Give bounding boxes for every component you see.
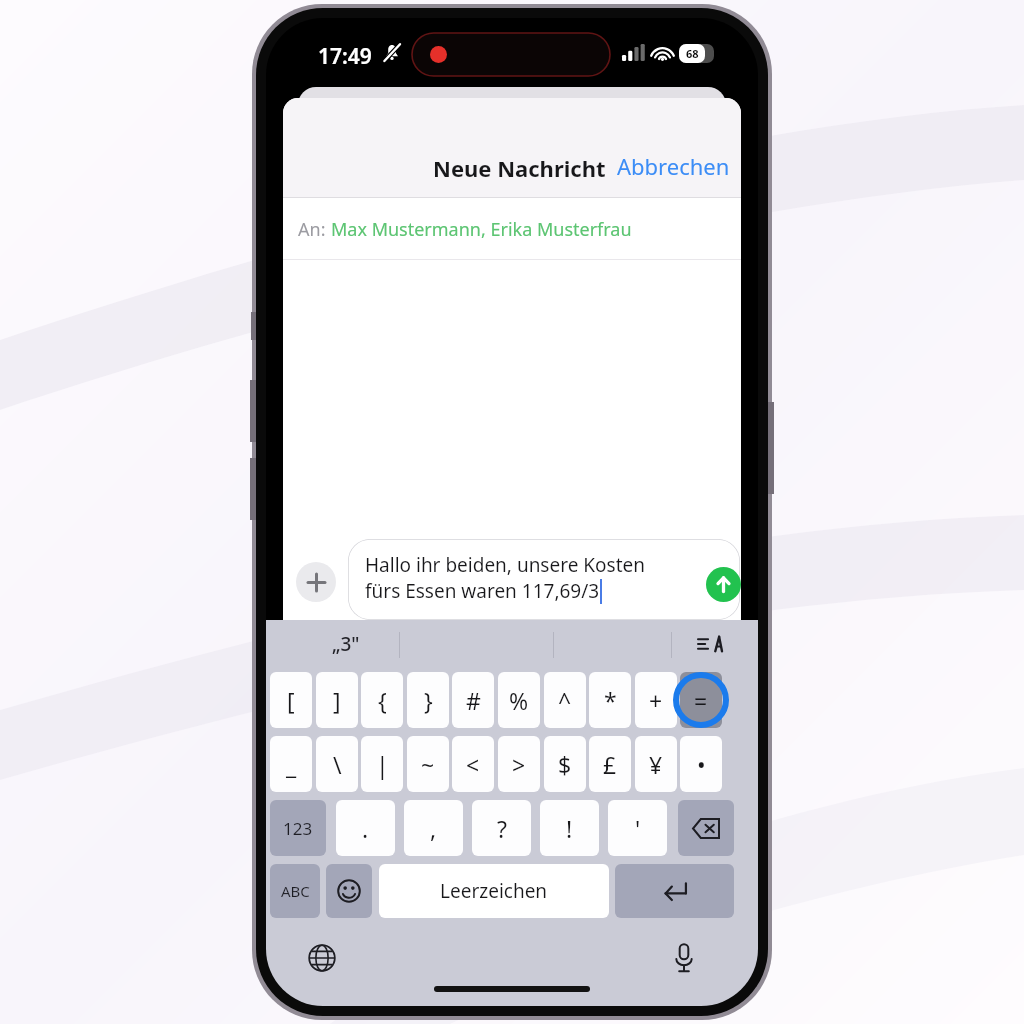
staticText: . [362, 813, 369, 844]
button[interactable]: „3" [296, 620, 396, 668]
staticText: $ [558, 749, 572, 780]
staticText: 17:49 [318, 42, 372, 71]
staticText: ? [497, 813, 507, 844]
staticText: ^ [558, 685, 572, 716]
staticText: [ [287, 685, 295, 716]
staticText: ¥ [649, 749, 663, 780]
button[interactable]: $ [544, 736, 586, 792]
button[interactable]: } [407, 672, 449, 728]
button[interactable]: Zeilenumbruch [615, 864, 734, 918]
button[interactable]: 123 [270, 800, 326, 856]
button[interactable]: Löschen [678, 800, 734, 856]
button[interactable]: = [680, 672, 722, 728]
button[interactable]: % [498, 672, 540, 728]
button[interactable]: ¥ [635, 736, 677, 792]
staticText: { [378, 685, 387, 716]
button[interactable]: ! [540, 800, 599, 856]
staticText: # [466, 685, 481, 716]
button[interactable]: Hallo ihr beiden, unsere Kosten [348, 539, 740, 620]
staticText: An: [298, 217, 331, 242]
button[interactable]: ^ [544, 672, 586, 728]
button[interactable]: ' [608, 800, 667, 856]
button[interactable]: ? [472, 800, 531, 856]
button[interactable]: { [361, 672, 403, 728]
button[interactable]: Tastatur wechseln [302, 938, 342, 978]
button[interactable]: Senden [706, 567, 741, 602]
staticText: • [697, 749, 706, 780]
staticText: } [424, 685, 433, 716]
staticText: , [430, 813, 437, 844]
staticText: * [604, 685, 617, 716]
button[interactable]: Diktieren [664, 938, 704, 978]
button[interactable]: # [452, 672, 494, 728]
button[interactable]: ABC [270, 864, 320, 918]
staticText: fürs Essen waren 117,69/3 [365, 578, 600, 604]
staticText: % [509, 685, 529, 716]
button[interactable]: | [361, 736, 403, 792]
button[interactable]: + [635, 672, 677, 728]
button[interactable]: Emoji [326, 864, 372, 918]
staticText: Hallo ihr beiden, unsere Kosten [365, 552, 645, 578]
button[interactable]: , [404, 800, 463, 856]
button[interactable]: * [589, 672, 631, 728]
staticText: | [376, 749, 389, 780]
staticText: 68 [686, 46, 699, 61]
staticText: Abbrechen [617, 151, 730, 181]
staticText: ] [333, 685, 341, 716]
staticText: _ [286, 749, 297, 780]
button[interactable]: \ [316, 736, 358, 792]
button[interactable]: Anhang hinzufügen [296, 562, 336, 602]
staticText: ! [566, 813, 573, 844]
button[interactable]: [ [270, 672, 312, 728]
staticText: > [512, 749, 526, 780]
staticText: + [649, 685, 663, 716]
button[interactable]: _ [270, 736, 312, 792]
staticText: ABC [281, 881, 310, 901]
button[interactable]: < [452, 736, 494, 792]
staticText: £ [603, 749, 617, 780]
button[interactable]: Textformatierung [684, 620, 736, 668]
button[interactable]: Abbrechen [607, 143, 740, 189]
button[interactable]: An: [283, 198, 741, 260]
button[interactable]: ~ [407, 736, 449, 792]
button[interactable]: • [680, 736, 722, 792]
button[interactable]: Leerzeichen [379, 864, 609, 918]
staticText: Max Mustermann, Erika Musterfrau [331, 217, 632, 242]
staticText: ~ [421, 749, 435, 780]
staticText: „3" [332, 631, 360, 657]
staticText: < [466, 749, 480, 780]
staticText: = [694, 685, 708, 716]
button[interactable]: ] [316, 672, 358, 728]
staticText: \ [333, 749, 342, 780]
staticText: 123 [283, 817, 313, 840]
button[interactable]: . [336, 800, 395, 856]
button[interactable]: £ [589, 736, 631, 792]
staticText: Leerzeichen [440, 878, 548, 904]
staticText: Neue Nachricht [433, 153, 606, 183]
staticText: ' [635, 813, 641, 844]
button[interactable]: > [498, 736, 540, 792]
